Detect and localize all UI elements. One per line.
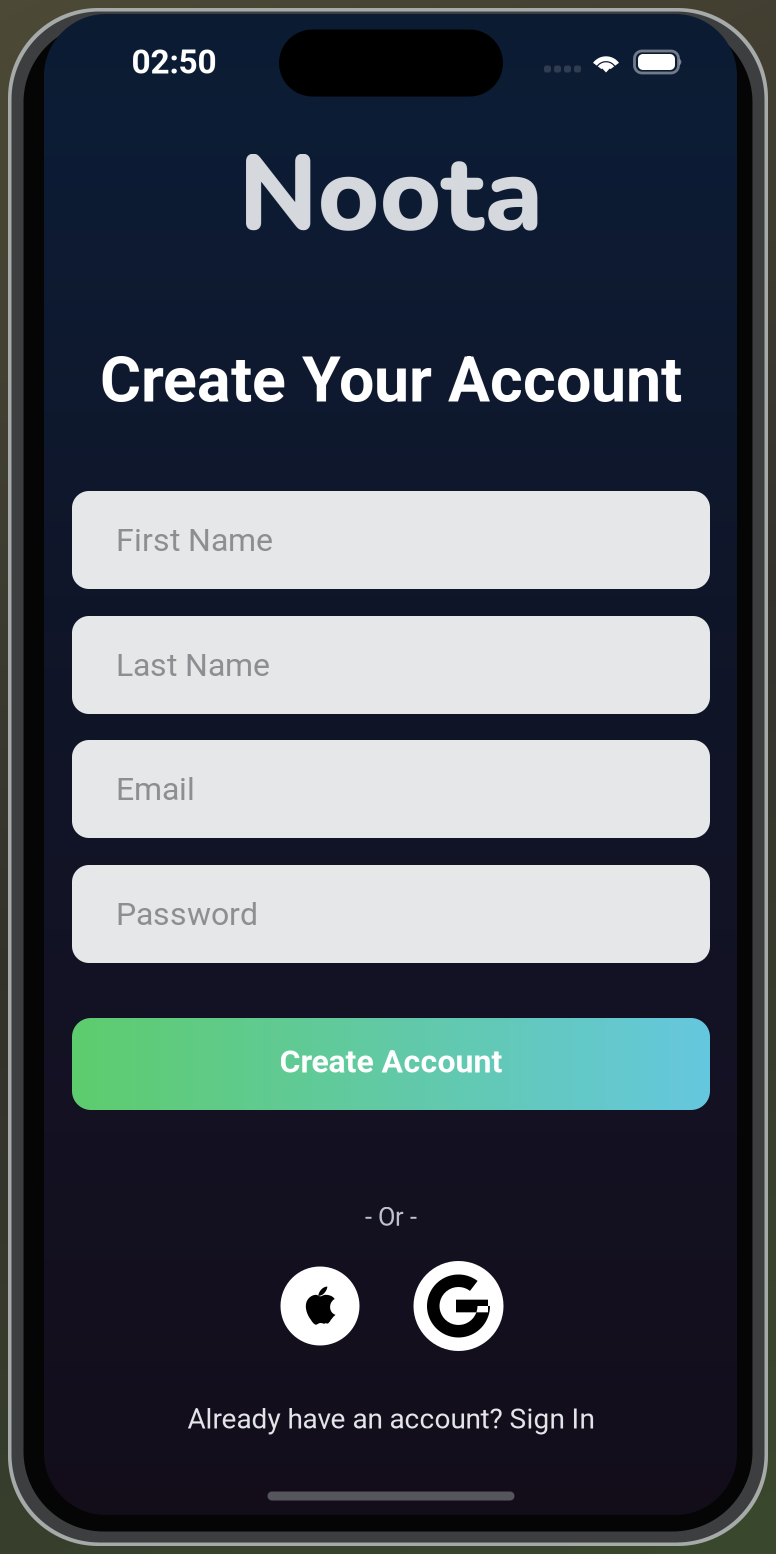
staticText: Password: [116, 895, 258, 933]
staticText: Create Your Account: [100, 343, 682, 417]
button[interactable]: Create Account: [72, 1018, 710, 1110]
staticText: Last Name: [116, 646, 270, 684]
staticText: First Name: [116, 521, 273, 559]
staticText: Noota: [238, 123, 543, 267]
button[interactable]: Password: [72, 865, 710, 963]
button[interactable]: Last Name: [72, 616, 710, 714]
button[interactable]: Email: [72, 740, 710, 838]
button[interactable]: Already have an account? Sign In: [187, 1403, 594, 1435]
staticText: Create Account: [279, 1043, 502, 1080]
staticText: - Or -: [365, 1202, 417, 1232]
button[interactable]: [280, 1266, 359, 1345]
button[interactable]: [413, 1261, 503, 1351]
button[interactable]: First Name: [72, 491, 710, 589]
staticText: Email: [116, 770, 195, 808]
staticText: 02:50: [131, 42, 216, 82]
staticText: Already have an account? Sign In: [187, 1403, 594, 1435]
